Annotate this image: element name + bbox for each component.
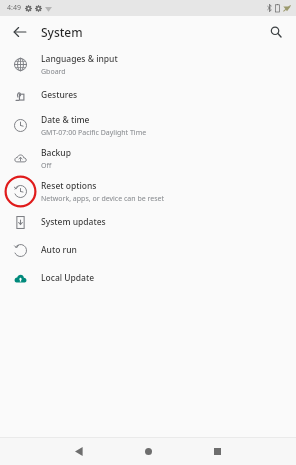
staticText: Network, apps, or device can be reset	[41, 194, 165, 204]
staticText: GMT-07:00 Pacific Daylight Time	[41, 128, 147, 138]
staticText: Backup	[41, 147, 71, 159]
button[interactable]: Search	[264, 20, 288, 44]
staticText: Gboard	[41, 67, 66, 77]
button[interactable]: Auto run	[0, 236, 296, 264]
staticText: Off	[41, 161, 52, 171]
button[interactable]: Local Update	[0, 264, 296, 292]
button[interactable]: Reset options	[0, 175, 296, 208]
staticText: System updates	[41, 216, 106, 228]
staticText: System	[41, 24, 83, 40]
button[interactable]: Back	[8, 20, 32, 44]
button[interactable]: Backup	[0, 142, 296, 175]
button[interactable]: Date & time	[0, 109, 296, 142]
button[interactable]: System updates	[0, 208, 296, 236]
button[interactable]: Languages & input	[0, 48, 296, 81]
staticText: Gestures	[41, 89, 78, 101]
staticText: Languages & input	[41, 53, 118, 65]
button[interactable]: Gestures	[0, 81, 296, 109]
button[interactable]: Home	[125, 438, 171, 465]
staticText: Local Update	[41, 272, 95, 284]
button[interactable]: Recent apps	[194, 438, 240, 465]
staticText: Reset options	[41, 180, 97, 192]
staticText: Auto run	[41, 244, 77, 256]
button[interactable]: Back	[56, 438, 102, 465]
staticText: 4:49	[7, 3, 21, 13]
staticText: Date & time	[41, 114, 90, 126]
